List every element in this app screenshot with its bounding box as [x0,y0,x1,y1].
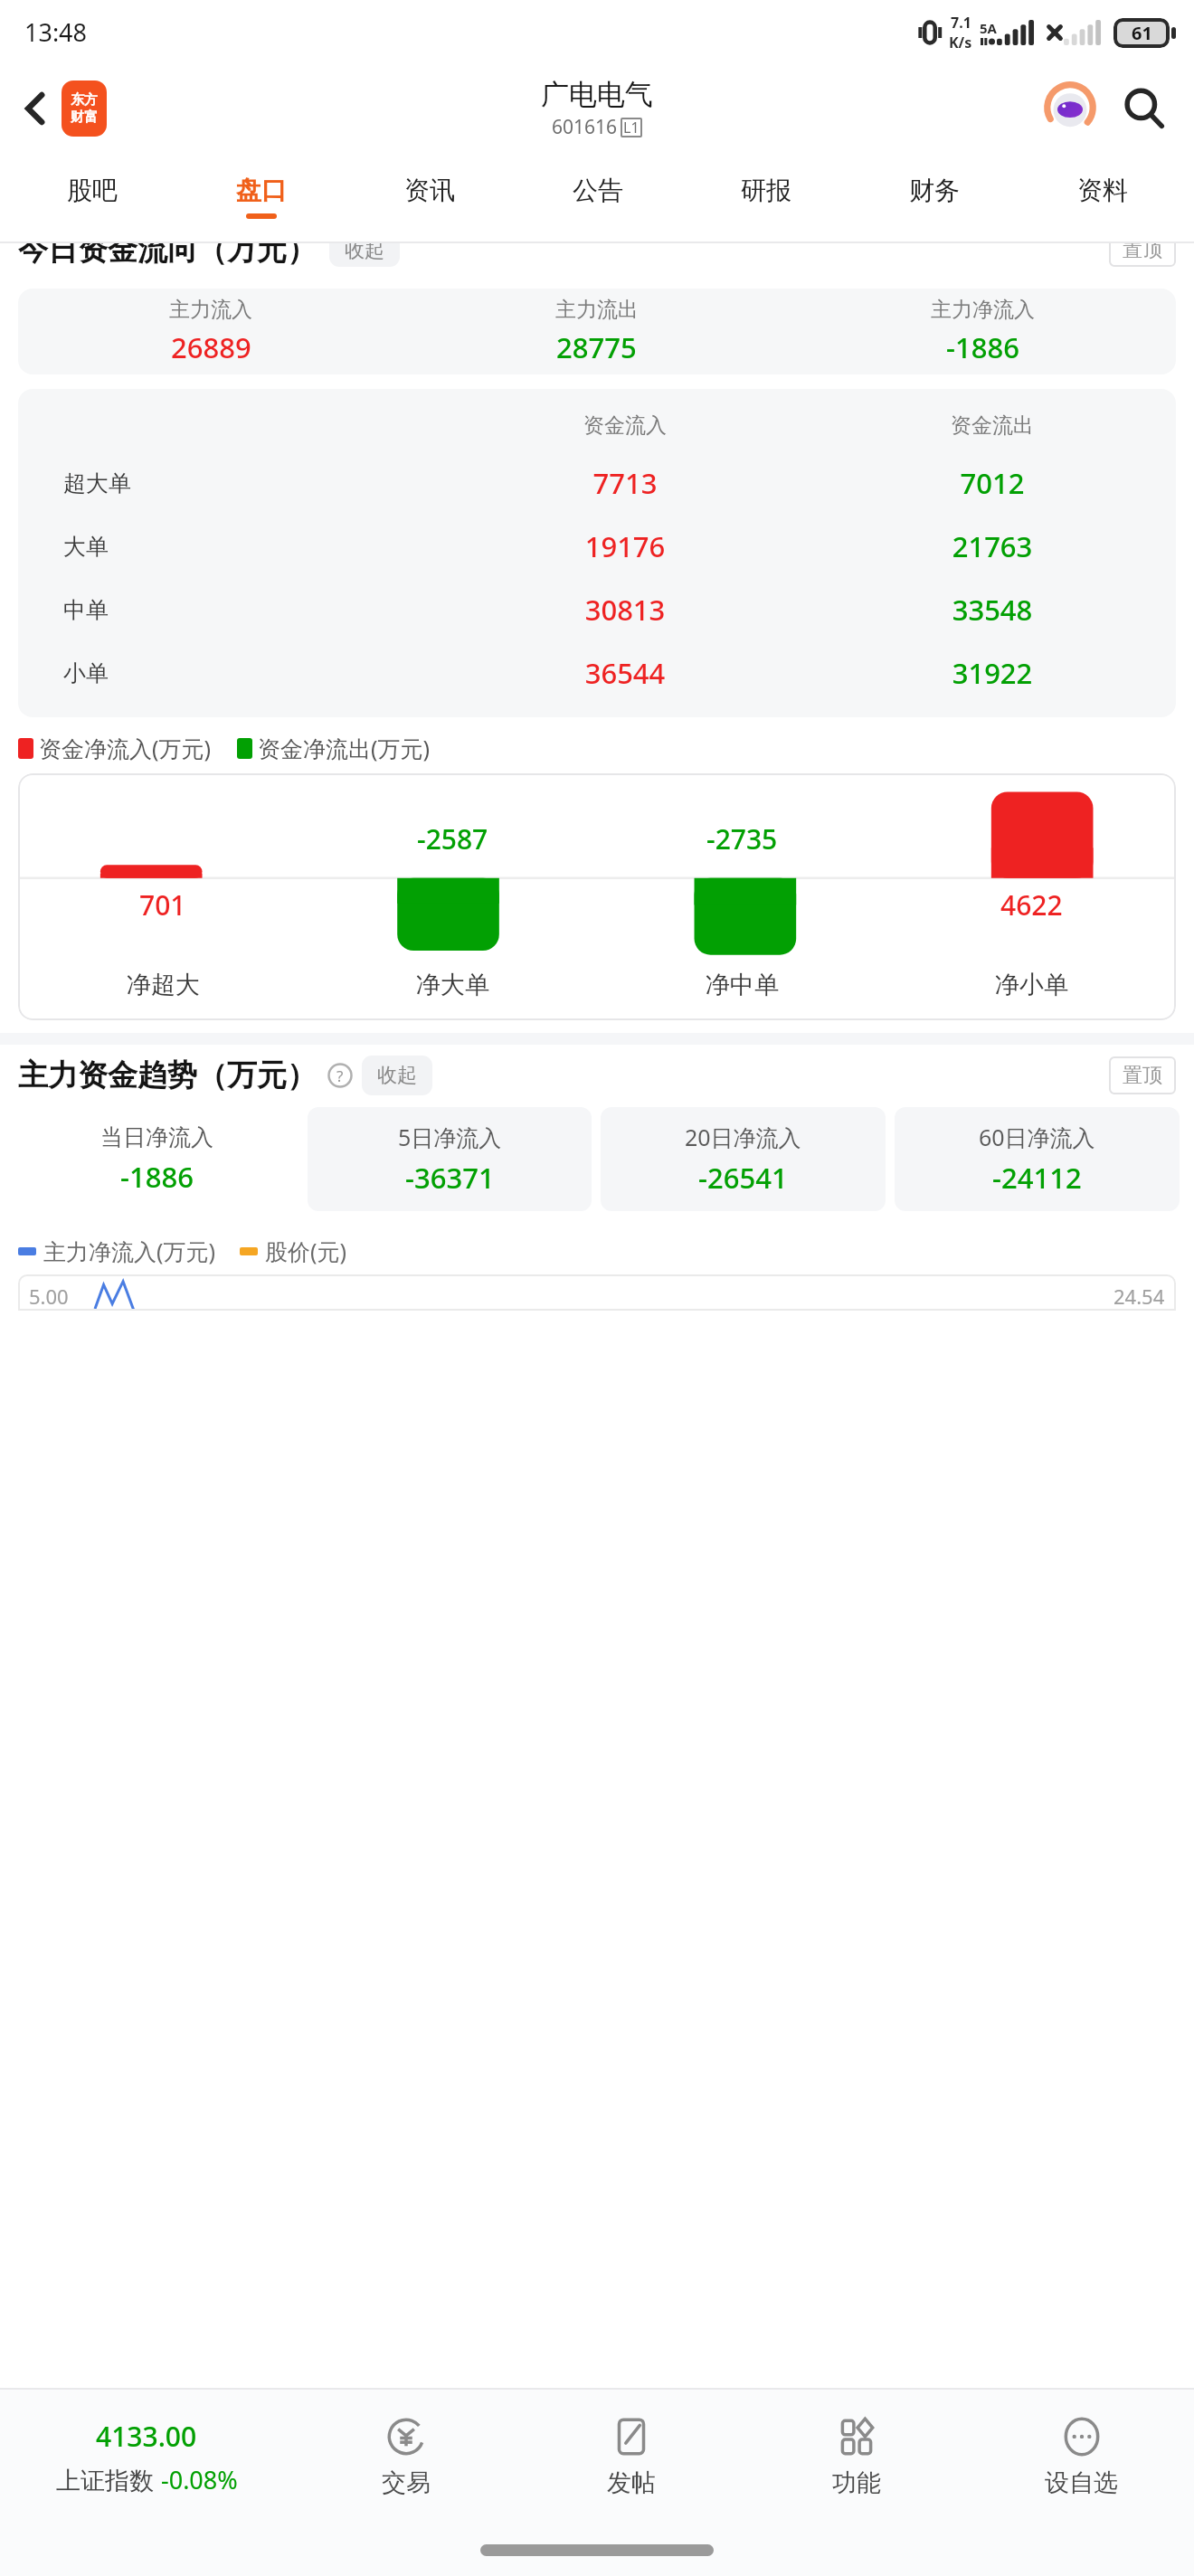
button[interactable]: Back [16,75,112,142]
staticText: 4622 [1000,886,1063,923]
staticText: ? [336,1065,344,1086]
staticText: 公告 [573,175,623,206]
staticText: 36544 [441,654,809,692]
staticText: 601616 [552,114,618,140]
button[interactable]: 超大单 [18,464,1176,502]
staticText: 20日净流入 [685,1122,801,1152]
staticText: -0.08% [161,2463,238,2496]
staticText: 7.1 [951,13,971,33]
staticText: 21763 [809,527,1176,565]
button[interactable]: 盘口 [176,152,346,241]
staticText: 广电电气 [541,77,653,112]
staticText: 31922 [809,654,1176,692]
staticText: 置顶 [1123,1063,1162,1088]
staticText: 交易 [382,2467,431,2498]
staticText: 主力净流入 [931,297,1035,323]
staticText: 上证指数 [56,2463,161,2496]
staticText: 大单 [63,533,109,561]
button[interactable]: 大单 [18,527,1176,565]
staticText: 7012 [809,464,1176,502]
staticText: 盘口 [236,175,287,206]
staticText: L1 [623,118,640,137]
button[interactable]: 置顶 [1109,243,1176,267]
staticText: 净中单 [706,970,779,1000]
staticText: 超大单 [63,469,131,497]
button[interactable]: 公告 [514,152,682,241]
staticText: 财务 [909,175,960,206]
staticText: 置顶 [1123,243,1162,260]
button[interactable]: 发帖 [518,2390,744,2524]
button[interactable]: 股吧 [7,152,176,241]
button[interactable]: 资料 [1019,152,1187,241]
staticText: 主力流入 [169,297,252,323]
button[interactable]: 701 [18,773,1176,1020]
staticText: 28775 [556,328,637,366]
staticText: 5日净流入 [398,1122,502,1152]
staticText: 19176 [441,527,809,565]
button[interactable]: 设自选 [969,2390,1194,2524]
button[interactable]: 功能 [744,2390,969,2524]
staticText: 资金净流入(万元) [39,733,212,763]
staticText: 主力净流入(万元) [43,1236,216,1266]
button[interactable]: 20日净流入 [601,1107,886,1211]
staticText: -2587 [417,820,488,857]
staticText: -36371 [405,1159,495,1197]
button[interactable]: 收起 [362,1056,432,1095]
button[interactable]: 当日净流入 [14,1107,298,1211]
staticText: 13:48 [24,15,88,49]
staticText: -2735 [706,820,778,857]
staticText: 研报 [741,175,791,206]
staticText: 资金流入 [441,412,809,439]
button[interactable]: 资讯 [346,152,514,241]
staticText: 股吧 [67,175,118,206]
button[interactable]: 60日净流入 [895,1107,1180,1211]
staticText: 收起 [345,243,384,260]
staticText: 资金净流出(万元) [258,733,431,763]
staticText: 东方 [71,91,98,109]
staticText: 4133.00 [96,2418,197,2455]
staticText: -1886 [120,1158,194,1196]
button[interactable]: 5日净流入 [308,1107,592,1211]
staticText: 5A [980,19,997,37]
staticText: 财富 [71,109,98,126]
staticText: 小单 [63,659,109,687]
staticText: 功能 [832,2467,881,2498]
staticText: 33548 [809,591,1176,629]
staticText: 7713 [441,464,809,502]
staticText: 60日净流入 [979,1122,1095,1152]
staticText: 26889 [171,328,251,366]
staticText: 61 [1132,21,1152,45]
other: Back [22,89,49,128]
button[interactable]: 置顶 [1109,1056,1176,1094]
staticText: 资讯 [404,175,455,206]
button[interactable]: 小单 [18,654,1176,692]
button[interactable]: Help [327,1063,353,1088]
staticText: -26541 [698,1159,788,1197]
staticText: 24.54 [1113,1283,1165,1310]
staticText: 股价(元) [265,1236,347,1266]
staticText: 当日净流入 [100,1123,213,1151]
staticText: 主力资金趋势（万元） [18,1056,317,1094]
staticText: -1886 [946,328,1019,366]
staticText: 今日资金流向（万元） [18,243,317,267]
button[interactable]: 研报 [682,152,850,241]
staticText: 资金流出 [809,412,1176,439]
button[interactable]: 主力流入 [18,289,1176,374]
staticText: -24112 [992,1159,1082,1197]
staticText: 设自选 [1045,2467,1118,2498]
button[interactable]: AI assistant [1042,80,1098,137]
staticText: 30813 [441,591,809,629]
staticText: 5.00 [29,1283,69,1310]
button[interactable]: 交易 [293,2390,518,2524]
staticText: K/s [949,33,972,52]
button[interactable]: 4133.00 [0,2390,293,2524]
button[interactable]: Search [1116,80,1172,137]
staticText: 净小单 [995,970,1068,1000]
button[interactable]: 财务 [850,152,1019,241]
staticText: 资料 [1077,175,1128,206]
staticText: 701 [139,886,186,923]
staticText: 中单 [63,596,109,624]
button[interactable]: 中单 [18,591,1176,629]
button[interactable]: 收起 [329,243,400,267]
staticText: 净大单 [416,970,489,1000]
